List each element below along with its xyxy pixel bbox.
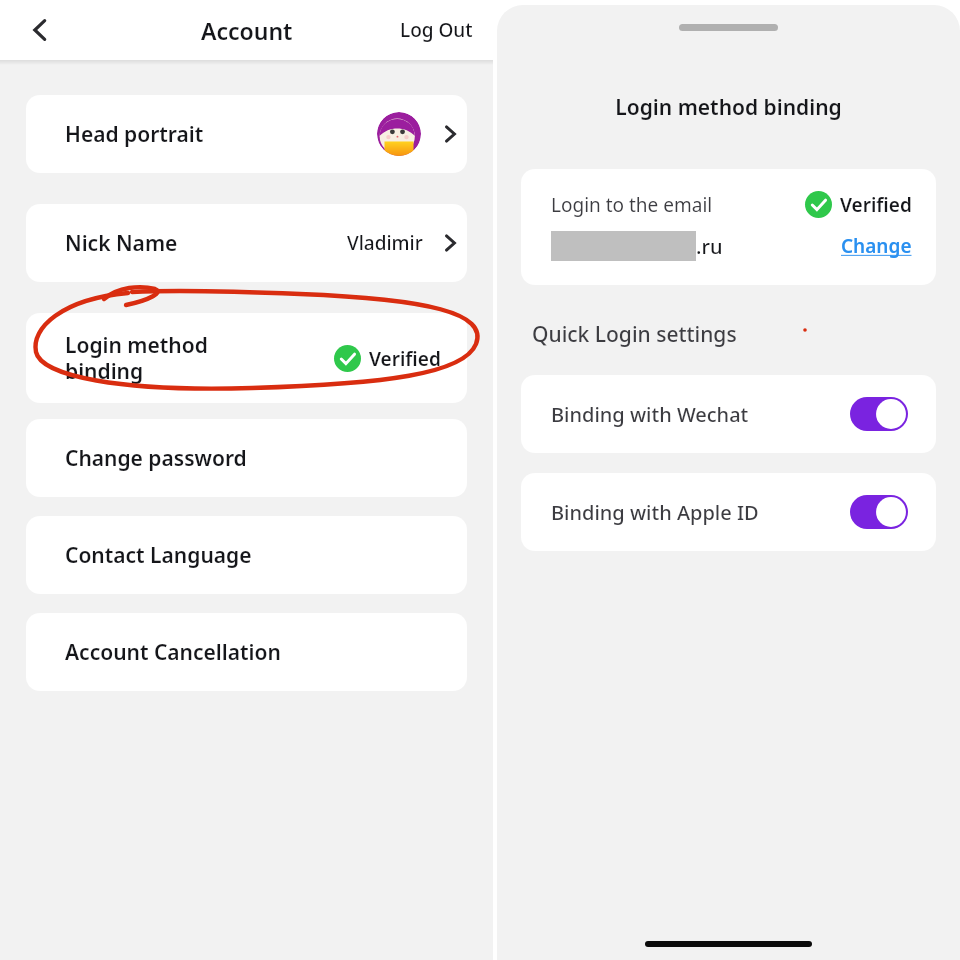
staticText: Quick Login settings	[532, 320, 737, 349]
staticText: Change	[841, 233, 912, 259]
staticText: Change password	[65, 444, 247, 473]
staticText: Vladimir	[347, 230, 423, 256]
staticText: Verified	[840, 192, 912, 218]
button[interactable]: Login to the email	[521, 169, 936, 285]
staticText: Contact Language	[65, 541, 252, 570]
staticText: Login method binding	[65, 331, 208, 386]
staticText: Login method binding	[497, 93, 960, 122]
button[interactable]: Back	[16, 6, 64, 54]
staticText: Account Cancellation	[65, 638, 281, 667]
button[interactable]: Binding with Apple ID	[521, 473, 936, 551]
button[interactable]: Binding with Wechat toggle, on	[850, 397, 908, 431]
button[interactable]: Nick Name	[26, 204, 467, 282]
button[interactable]: Head portrait	[26, 95, 467, 173]
button[interactable]: Login method binding	[26, 313, 467, 403]
staticText: .ru	[696, 233, 723, 260]
button[interactable]: Binding with Apple ID toggle, on	[850, 495, 908, 529]
staticText: Log Out	[400, 17, 473, 43]
staticText: Verified	[369, 346, 441, 372]
staticText: Binding with Wechat	[551, 401, 749, 428]
staticText: Account	[201, 15, 293, 46]
button[interactable]: Change	[841, 233, 912, 259]
button[interactable]: Change password	[26, 419, 467, 497]
staticText: Head portrait	[65, 120, 204, 149]
button[interactable]: Account Cancellation	[26, 613, 467, 691]
staticText: Binding with Apple ID	[551, 499, 759, 526]
staticText: Login to the email	[551, 192, 713, 218]
button[interactable]: Contact Language	[26, 516, 467, 594]
button[interactable]: Binding with Wechat	[521, 375, 936, 453]
button[interactable]: Log Out	[400, 17, 473, 43]
staticText: Nick Name	[65, 229, 178, 258]
